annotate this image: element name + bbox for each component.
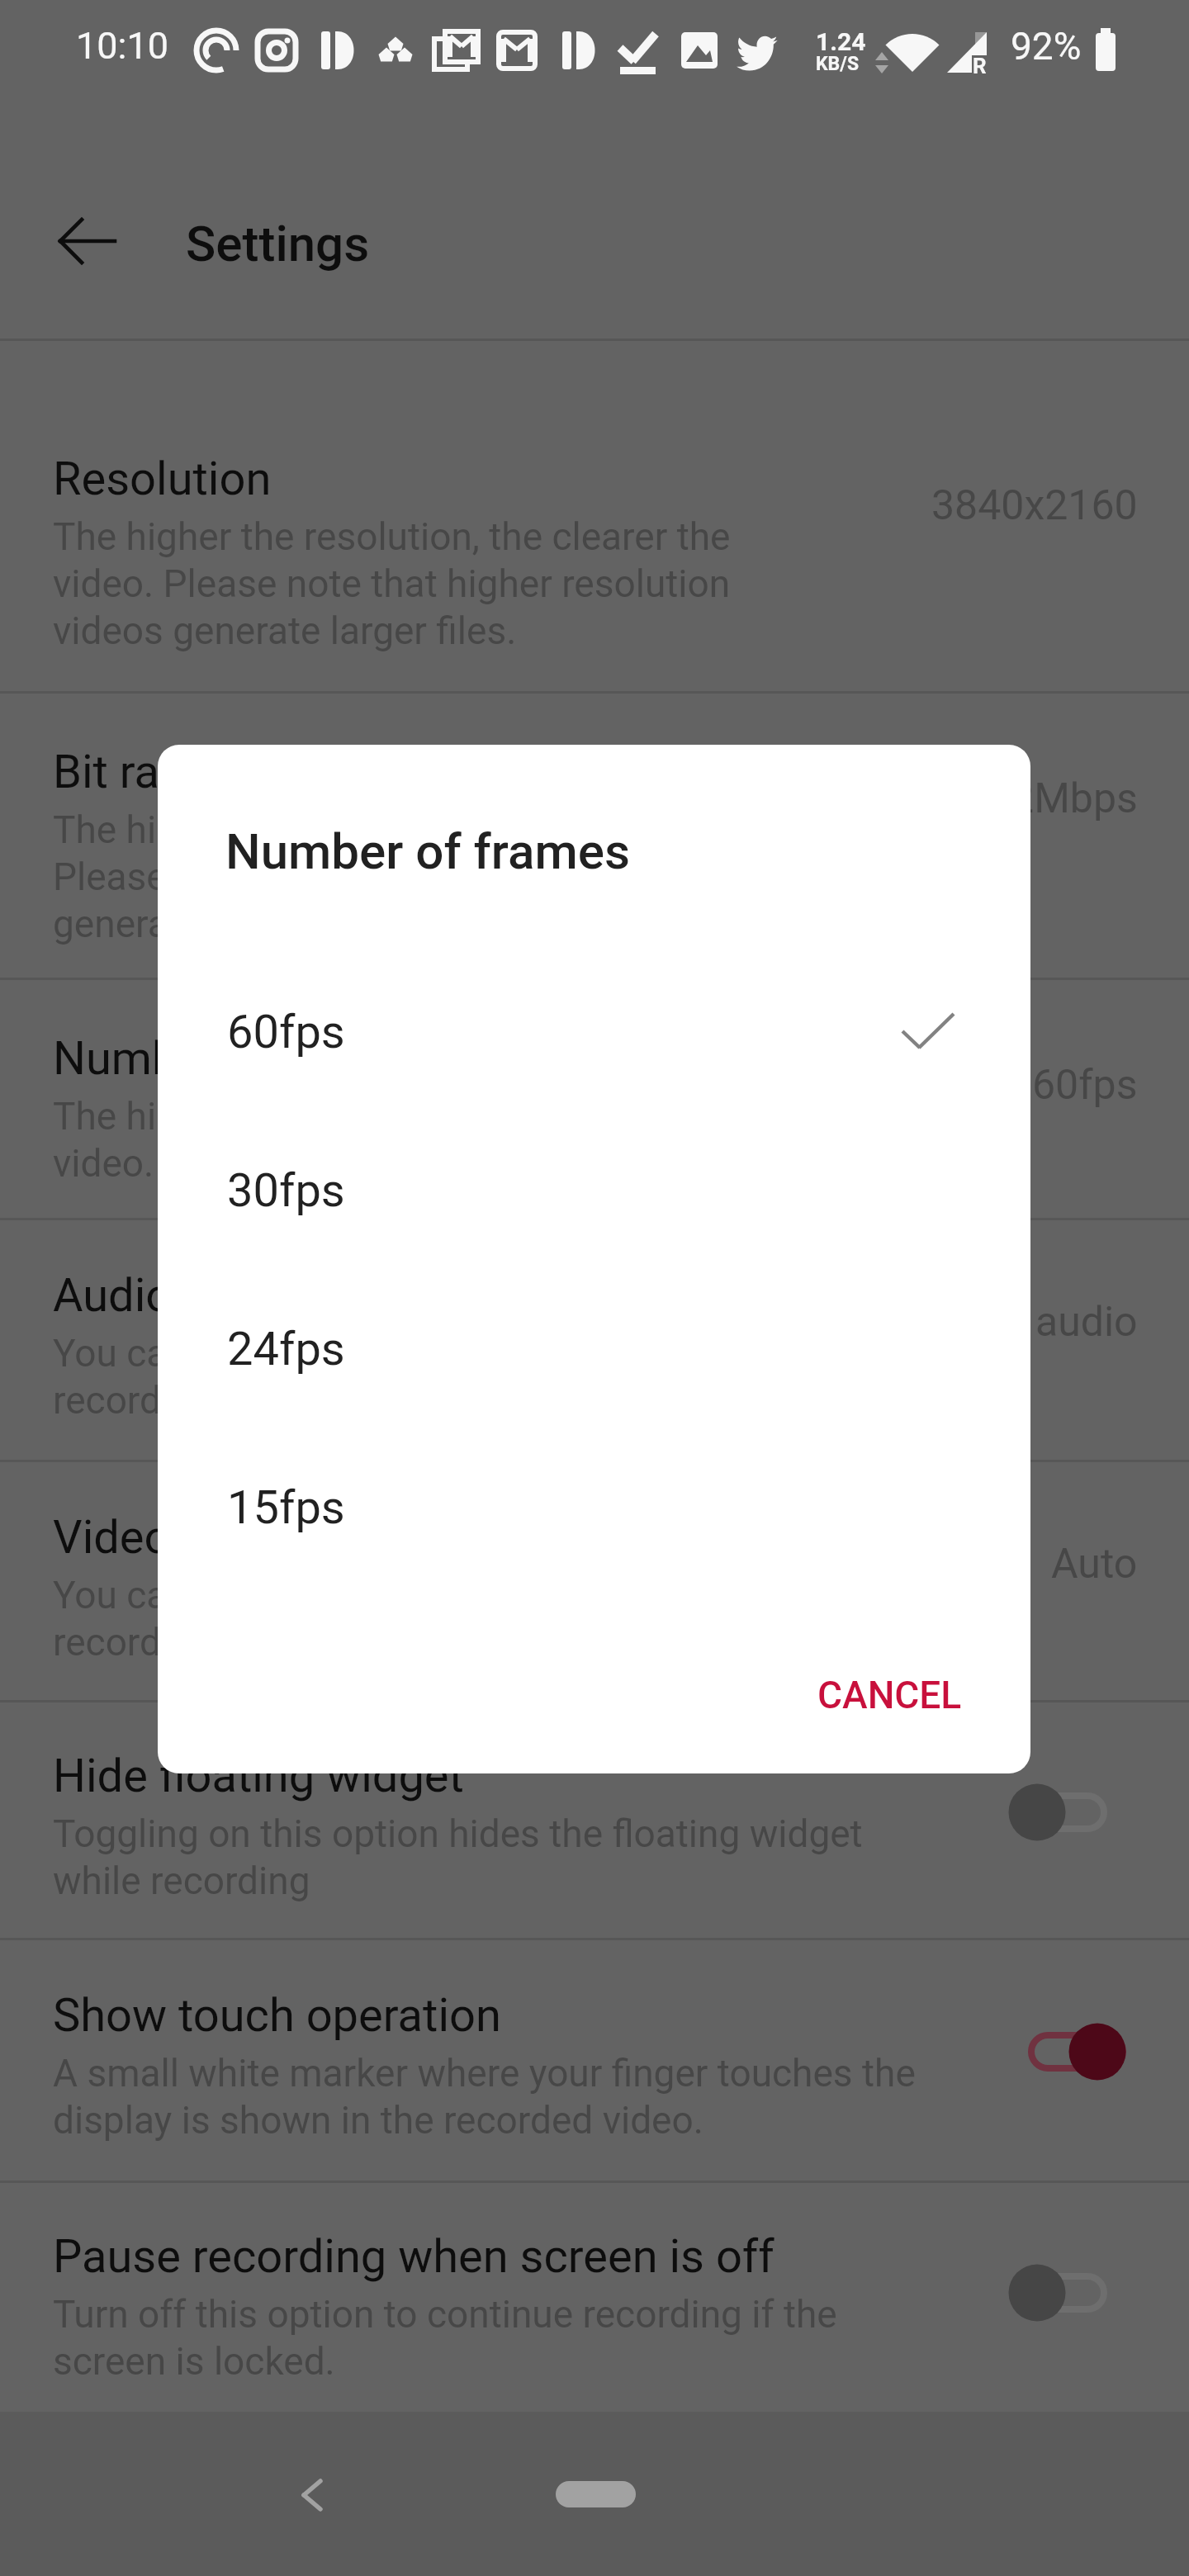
staticText: You can choose the orientation of the re… (53, 1573, 821, 1664)
staticText: Settings (186, 215, 370, 272)
button[interactable]: 15fps (158, 1425, 1030, 1584)
button[interactable]: 30fps (158, 1108, 1030, 1267)
staticText: KB/S (816, 53, 860, 75)
button[interactable]: Number of frames (0, 980, 1189, 1218)
button[interactable]: Audio (0, 1220, 1189, 1460)
staticText: 24fps (227, 1322, 345, 1376)
button[interactable]: Toggle off (989, 1768, 1146, 1857)
staticText: 12Mbps (988, 774, 1138, 823)
staticText: A small white marker where your finger t… (53, 2051, 936, 2143)
button[interactable]: Resolution (0, 341, 1189, 691)
staticText: audio (1035, 1298, 1138, 1347)
button[interactable]: 60fps (158, 949, 1030, 1108)
staticText: Video orientation (53, 1510, 405, 1565)
button[interactable]: Pause recording when screen is off (0, 2183, 1189, 2412)
staticText: The higher the resolution, the clearer t… (53, 514, 821, 653)
staticText: The higher the bit rate, the clearer the… (53, 807, 821, 946)
staticText: 30fps (227, 1163, 345, 1218)
staticText: You can choose whether or not the video … (53, 1331, 821, 1423)
staticText: Auto (1051, 1540, 1138, 1589)
button[interactable]: Video orientation (0, 1462, 1189, 1700)
staticText: 10:10 (76, 24, 169, 68)
button[interactable]: CANCEL (817, 1673, 962, 1717)
staticText: Toggling on this option hides the floati… (53, 1811, 936, 1903)
staticText: Number of frames (53, 1031, 429, 1086)
staticText: 15fps (227, 1480, 345, 1535)
button[interactable]: Hide floating widget (0, 1702, 1189, 1938)
button[interactable]: 24fps (158, 1267, 1030, 1425)
button[interactable]: Toggle off (989, 2248, 1146, 2337)
staticText: 3840x2160 (931, 481, 1138, 530)
staticText: 60fps (1032, 1061, 1138, 1110)
staticText: R (973, 54, 987, 78)
staticText: Pause recording when screen is off (53, 2229, 775, 2284)
staticText: 92% (1011, 24, 1082, 69)
staticText: Resolution (53, 452, 272, 506)
staticText: Audio (53, 1268, 173, 1323)
staticText: 1.24 (816, 27, 866, 56)
staticText: Hide floating widget (53, 1749, 464, 1803)
button[interactable]: Home (556, 2481, 636, 2507)
staticText: Show touch operation (53, 1988, 501, 2043)
staticText: Turn off this option to continue recordi… (53, 2292, 936, 2384)
staticText: Number of frames (225, 822, 630, 880)
staticText: CANCEL (817, 1673, 962, 1717)
button[interactable]: Toggle on (989, 2007, 1146, 2096)
button[interactable]: Back (263, 2463, 362, 2562)
button[interactable]: Bit rate (0, 694, 1189, 978)
button[interactable]: Show touch operation (0, 1940, 1189, 2181)
staticText: The higher the frame rate, the smoother … (53, 1094, 821, 1186)
staticText: 60fps (227, 1005, 345, 1059)
button[interactable]: Back (31, 183, 147, 299)
staticText: Bit rate (53, 745, 200, 799)
